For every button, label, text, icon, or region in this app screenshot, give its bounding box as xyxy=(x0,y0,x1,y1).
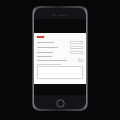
button[interactable] xyxy=(78,59,83,62)
button[interactable] xyxy=(70,51,83,54)
button[interactable] xyxy=(70,41,83,44)
button[interactable] xyxy=(37,66,83,79)
button[interactable]: Home button xyxy=(56,99,65,108)
button[interactable] xyxy=(70,46,83,49)
